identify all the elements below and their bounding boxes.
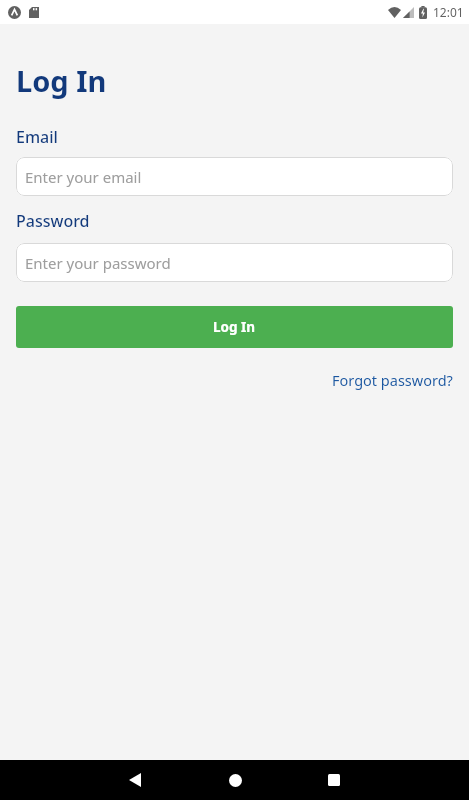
button[interactable]: Log In: [16, 306, 453, 348]
staticText: Log In: [213, 318, 256, 336]
button[interactable]: Forgot password?: [332, 370, 453, 390]
staticText: Enter your email: [25, 167, 142, 187]
button[interactable]: [314, 760, 354, 800]
button[interactable]: Enter your password: [16, 243, 453, 282]
button[interactable]: [115, 760, 155, 800]
staticText: Email: [16, 126, 58, 148]
staticText: Enter your password: [25, 253, 171, 273]
button[interactable]: [215, 760, 255, 800]
staticText: Password: [16, 210, 90, 232]
staticText: Forgot password?: [332, 370, 453, 390]
button[interactable]: Enter your email: [16, 157, 453, 196]
staticText: Log In: [16, 61, 107, 100]
staticText: 12:01: [433, 4, 464, 20]
